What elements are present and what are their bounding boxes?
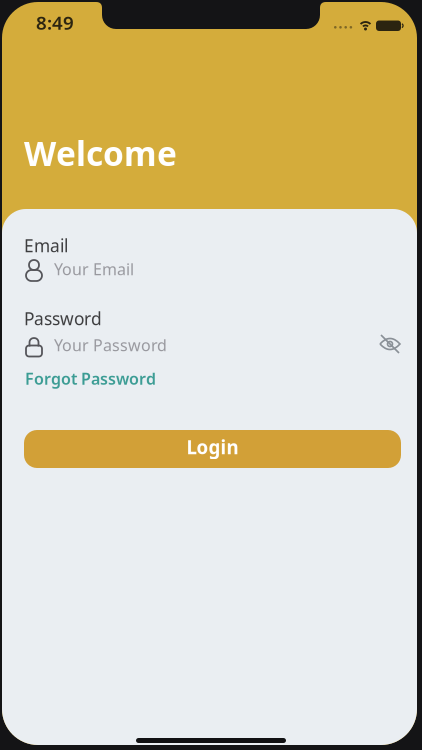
button[interactable]: Show password bbox=[375, 331, 405, 357]
button[interactable]: Your Password bbox=[26, 332, 366, 358]
button[interactable]: Login bbox=[24, 430, 401, 468]
staticText: Welcome bbox=[24, 131, 177, 175]
staticText: Your Password bbox=[54, 334, 167, 356]
staticText: Forgot Password bbox=[25, 368, 156, 389]
staticText: Password bbox=[24, 307, 102, 330]
staticText: Email bbox=[24, 234, 68, 257]
staticText: Login bbox=[186, 435, 238, 459]
button[interactable]: Your Email bbox=[26, 256, 404, 282]
button[interactable]: Forgot Password bbox=[25, 368, 156, 389]
staticText: 8:49 bbox=[36, 10, 74, 35]
staticText: Your Email bbox=[54, 258, 134, 280]
